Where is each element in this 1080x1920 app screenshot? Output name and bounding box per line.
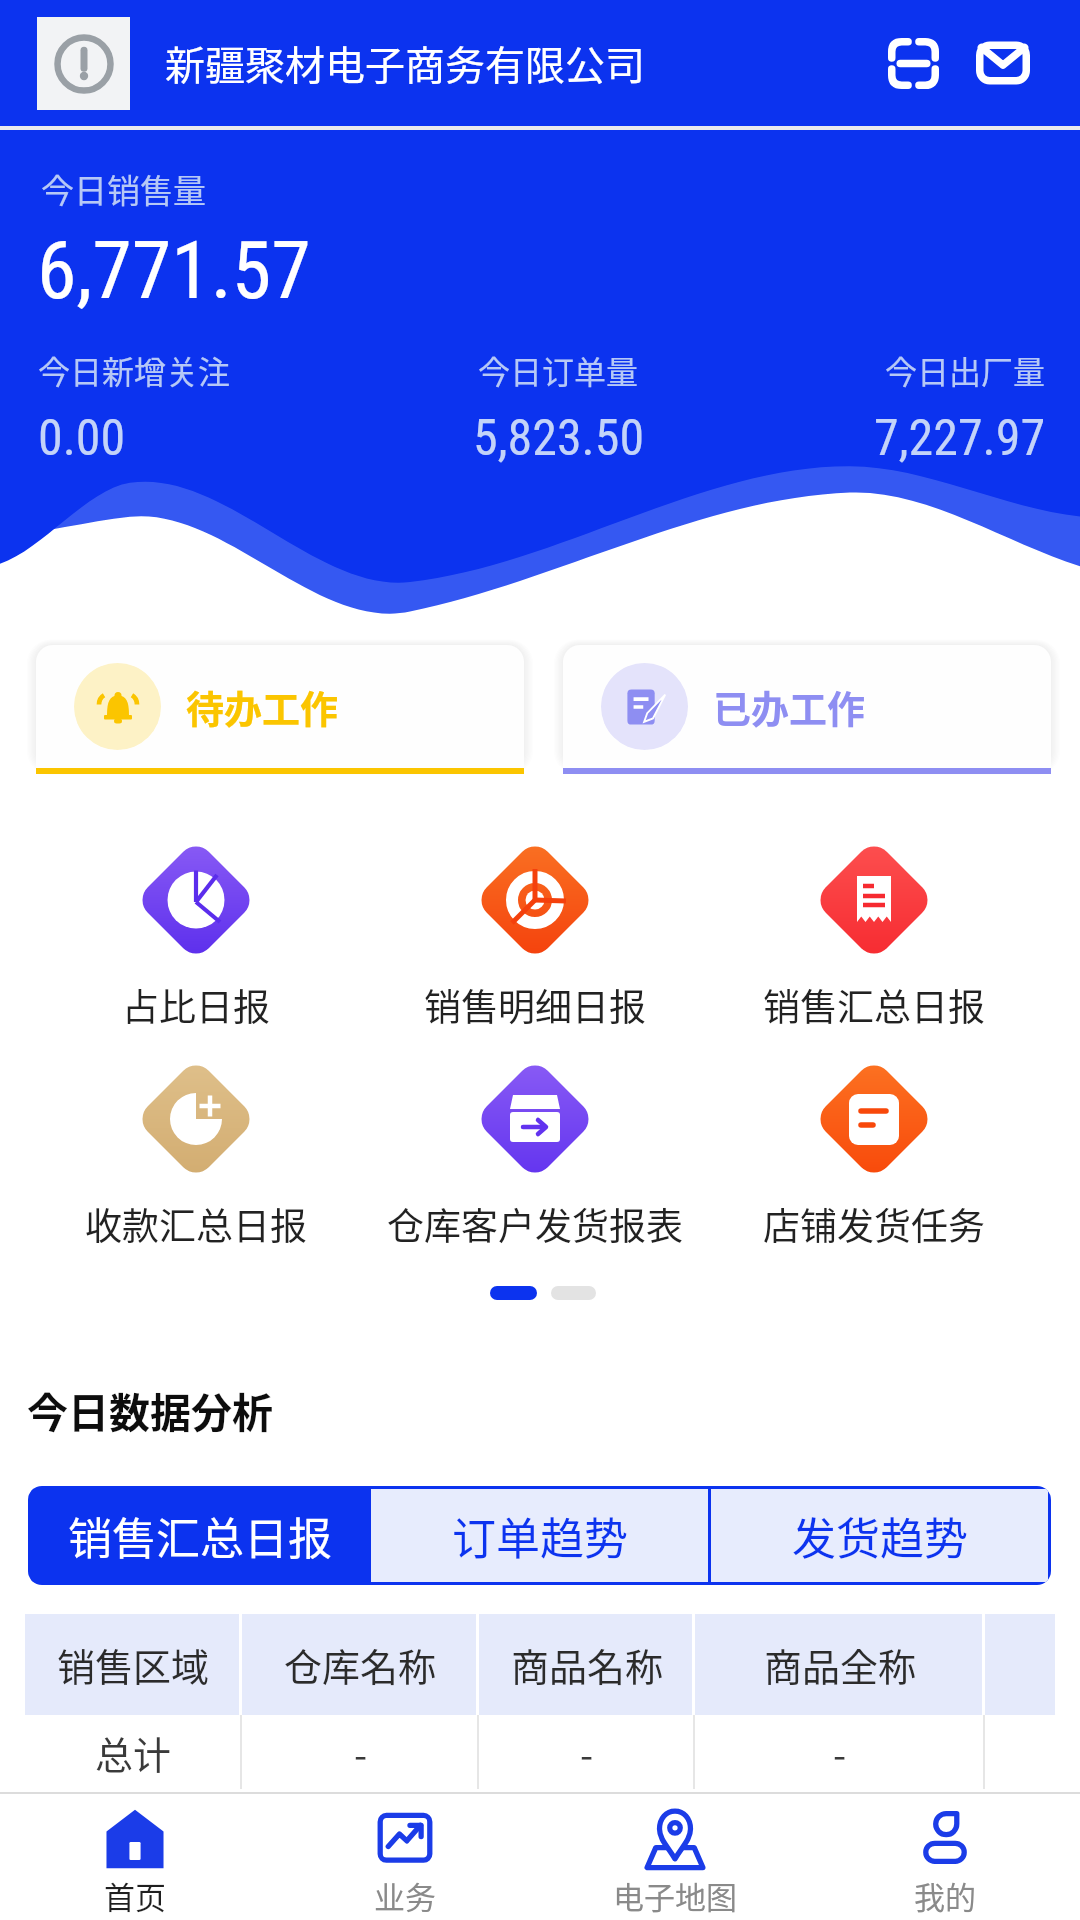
staticText: 商品名称 [511, 1637, 664, 1692]
staticText: 今日订单量 [478, 347, 639, 393]
staticText: 业务 [374, 1873, 436, 1918]
button[interactable]: 占比日报 [27, 844, 365, 1032]
staticText: 订单趋势 [452, 1504, 628, 1568]
staticText: - [354, 1725, 368, 1780]
staticText: 销售汇总日报 [68, 1504, 332, 1568]
button[interactable]: 电子地图 [540, 1794, 810, 1920]
button[interactable]: 订单趋势 [371, 1489, 708, 1582]
staticText: 5,823.50 [473, 409, 645, 468]
staticText: - [833, 1725, 847, 1780]
button[interactable]: 我的 [810, 1794, 1080, 1920]
staticText: 发货趋势 [792, 1504, 968, 1568]
staticText: 仓库名称 [284, 1637, 437, 1692]
staticText: 今日出厂量 [885, 347, 1046, 393]
button[interactable]: 待办工作 [36, 645, 524, 774]
button[interactable]: 业务 [270, 1794, 540, 1920]
staticText: 今日数据分析 [27, 1380, 273, 1439]
button[interactable]: 消息 [958, 18, 1048, 108]
staticText: - [580, 1725, 594, 1780]
button[interactable]: 店铺发货任务 [704, 1063, 1043, 1251]
button[interactable]: 发货趋势 [711, 1489, 1048, 1582]
staticText: 新疆聚材电子商务有限公司 [165, 34, 645, 92]
button[interactable]: 首页 [0, 1794, 270, 1920]
staticText: 总计 [95, 1725, 172, 1780]
staticText: 销售明细日报 [424, 978, 646, 1032]
button[interactable]: 仓库客户发货报表 [365, 1063, 704, 1251]
button[interactable]: 扫一扫 [868, 18, 958, 108]
staticText: 销售汇总日报 [763, 978, 985, 1032]
button[interactable]: 销售汇总日报 [704, 844, 1043, 1032]
button[interactable]: 收款汇总日报 [27, 1063, 365, 1251]
staticText: 仓库客户发货报表 [387, 1197, 683, 1251]
staticText: 今日新增关注 [38, 347, 231, 393]
staticText: 电子地图 [613, 1873, 737, 1918]
staticText: 占比日报 [122, 978, 270, 1032]
button[interactable]: 销售明细日报 [365, 844, 704, 1032]
button[interactable]: 销售汇总日报 [31, 1489, 368, 1582]
staticText: 店铺发货任务 [763, 1197, 985, 1251]
staticText: 首页 [104, 1873, 166, 1918]
staticText: 销售区域 [57, 1637, 210, 1692]
staticText: 6,771.57 [37, 224, 311, 318]
staticText: 已办工作 [713, 679, 866, 734]
staticText: 我的 [914, 1873, 976, 1918]
staticText: 7,227.97 [874, 409, 1046, 468]
staticText: 待办工作 [186, 679, 339, 734]
staticText: 0.00 [38, 409, 126, 468]
staticText: 今日销售量 [41, 165, 206, 213]
staticText: 收款汇总日报 [85, 1197, 307, 1251]
button[interactable]: 已办工作 [563, 645, 1051, 774]
staticText: 商品全称 [764, 1637, 917, 1692]
